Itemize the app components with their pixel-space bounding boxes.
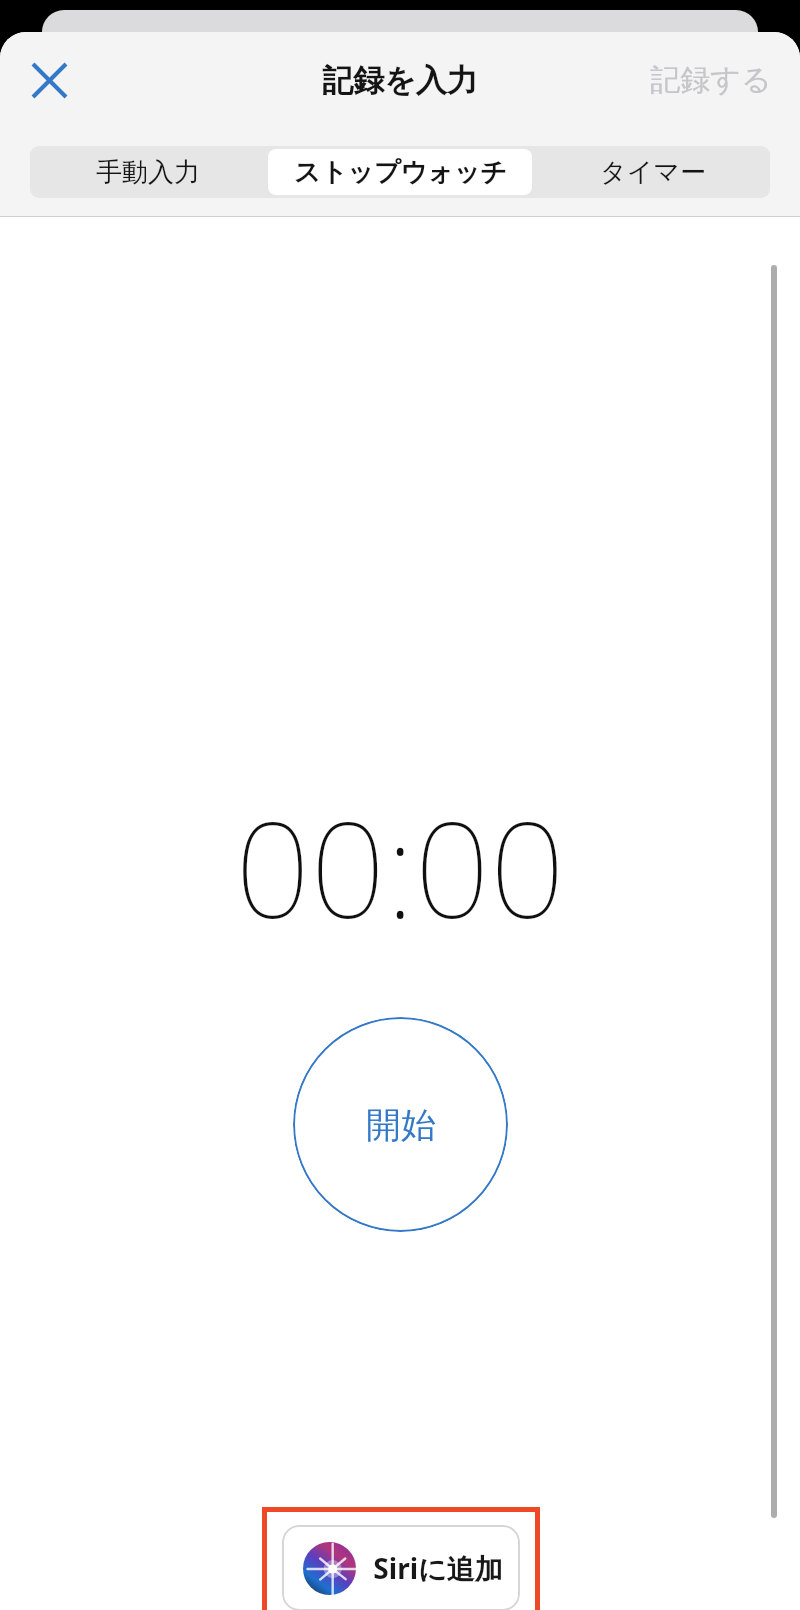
button[interactable]: Siri xyxy=(282,1525,520,1610)
staticText: Siriに追加 xyxy=(373,1549,503,1587)
button[interactable]: 手動入力 xyxy=(33,149,262,195)
staticText: ストップウォッチ xyxy=(294,156,507,189)
staticText: タイマー xyxy=(600,156,706,189)
button[interactable]: 記録する xyxy=(644,49,778,111)
other: Siri xyxy=(303,1542,356,1595)
button[interactable]: タイマー xyxy=(538,149,767,195)
staticText: 記録を入力 xyxy=(322,61,478,100)
staticText: 手動入力 xyxy=(96,156,200,189)
staticText: 開始 xyxy=(366,1103,436,1147)
button[interactable]: ストップウォッチ xyxy=(268,149,532,195)
staticText: 00:00 xyxy=(235,777,565,957)
staticText: 記録する xyxy=(650,61,772,99)
button[interactable]: 閉じる xyxy=(18,49,80,111)
button[interactable]: 開始 xyxy=(293,1017,508,1232)
